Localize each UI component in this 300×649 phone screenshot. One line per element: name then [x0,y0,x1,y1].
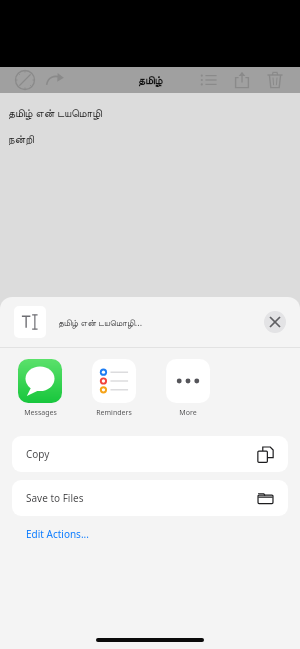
button[interactable]: Delete [265,70,285,90]
button[interactable]: தமிழ் என் டயமொழி... [0,297,300,347]
button[interactable]: Redo [44,69,66,91]
staticText: Edit Actions... [26,527,89,541]
button[interactable]: Reminders [88,359,140,418]
staticText: நன்றி [8,134,34,145]
staticText: தமிழ் என் டயமொழி [8,105,102,120]
button[interactable]: List [199,70,219,90]
staticText: Save to Files [26,491,84,505]
staticText: More [179,408,197,418]
staticText: தமிழ் என் டயமொழி... [58,316,143,328]
button[interactable]: Messages [14,359,66,418]
staticText: Copy [26,447,50,461]
staticText: Reminders [96,408,132,418]
button[interactable]: Save to Files [12,480,288,516]
button[interactable]: Close [264,311,286,333]
button[interactable]: Copy [12,436,288,472]
staticText: Messages [24,408,57,418]
staticText: தமிழ் [138,75,163,86]
button[interactable]: Compass [14,69,36,91]
button[interactable]: More [162,359,214,418]
button[interactable]: Edit Actions... [26,527,300,541]
button[interactable]: Share [232,70,252,90]
